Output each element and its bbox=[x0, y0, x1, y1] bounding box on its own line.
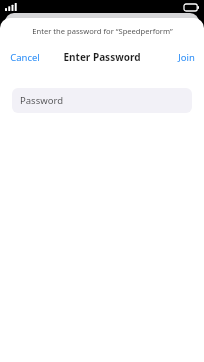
staticText: Enter Password bbox=[63, 50, 141, 64]
button[interactable]: Cancel bbox=[0, 47, 50, 68]
staticText: Enter the password for “Speedperform” bbox=[32, 26, 173, 36]
staticText: Cancel bbox=[10, 51, 40, 64]
other: Cellular signal bbox=[5, 3, 19, 11]
button[interactable]: Join bbox=[169, 47, 204, 68]
button[interactable]: Password bbox=[12, 88, 192, 113]
other: Battery bbox=[184, 4, 199, 11]
staticText: Password bbox=[20, 94, 63, 107]
staticText: Join bbox=[178, 51, 195, 64]
